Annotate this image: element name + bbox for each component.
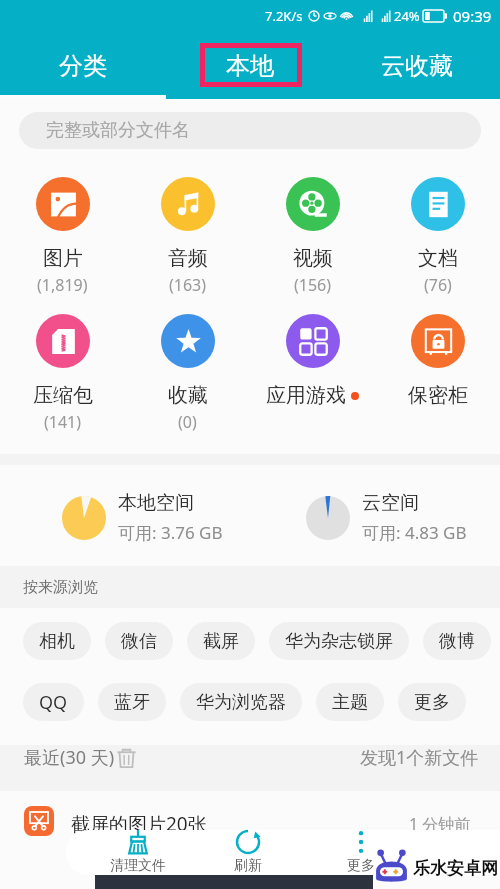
button[interactable]: 更多 (318, 825, 404, 875)
button[interactable]: 音频 (125, 177, 250, 296)
staticText: (76) (424, 274, 452, 296)
other: 更多 (348, 829, 374, 855)
staticText: 刷新 (234, 857, 262, 875)
staticText: 主题 (332, 691, 368, 714)
staticText: 华为浏览器 (196, 691, 286, 714)
other: 清理文件 (125, 829, 151, 855)
staticText: 可用: 3.76 GB (118, 521, 223, 544)
staticText: 华为杂志锁屏 (285, 630, 393, 653)
button[interactable]: 华为浏览器 (180, 683, 302, 721)
staticText: 可用: 4.83 GB (362, 521, 467, 544)
staticText: 发现1个新文件 (360, 745, 479, 770)
staticText: (1,819) (37, 274, 88, 296)
staticText: 按来源浏览 (23, 578, 98, 597)
button[interactable]: 云收藏 (333, 32, 500, 99)
staticText: 相机 (39, 630, 75, 653)
staticText: 乐水安卓网 (413, 858, 498, 879)
button[interactable]: 文档 (375, 177, 500, 296)
button[interactable]: 视频 (250, 177, 375, 296)
staticText: 24% (394, 7, 420, 25)
button[interactable]: 完整或部分文件名 (19, 112, 481, 149)
button[interactable]: 微信 (105, 622, 173, 660)
button[interactable]: 主题 (316, 683, 384, 721)
staticText: 图片 (43, 246, 83, 271)
staticText: 保密柜 (408, 383, 468, 408)
button[interactable]: 云空间 (306, 491, 467, 544)
button[interactable]: 蓝牙 (98, 683, 166, 721)
staticText: 压缩包 (33, 383, 93, 408)
staticText: 蓝牙 (114, 691, 150, 714)
button[interactable]: QQ (23, 683, 84, 721)
staticText: 音频 (168, 246, 208, 271)
button[interactable]: 更多 (398, 683, 466, 721)
staticText: 微博 (439, 630, 475, 653)
staticText: 本地空间 (118, 491, 194, 515)
button[interactable]: 应用游戏 (250, 314, 375, 408)
staticText: 本地 (226, 51, 274, 81)
staticText: 云收藏 (381, 51, 453, 81)
staticText: 最近(30 天) (24, 745, 115, 770)
staticText: 文档 (418, 246, 458, 271)
button[interactable]: 本地 (166, 32, 333, 99)
button[interactable]: 截屏 (187, 622, 255, 660)
staticText: 完整或部分文件名 (46, 119, 190, 142)
staticText: (141) (44, 411, 82, 433)
staticText: 视频 (293, 246, 333, 271)
staticText: 微信 (121, 630, 157, 653)
button[interactable]: 刷新 (205, 825, 291, 875)
staticText: 云空间 (362, 491, 419, 515)
staticText: 09:39 (453, 6, 492, 26)
staticText: 清理文件 (110, 857, 166, 875)
button[interactable]: 本地空间 (62, 491, 223, 544)
button[interactable]: Clear recent files (117, 747, 136, 768)
button[interactable]: 清理文件 (95, 825, 181, 875)
button[interactable]: 相机 (23, 622, 91, 660)
other: 刷新 (235, 829, 261, 855)
staticText: 截屏 (203, 630, 239, 653)
staticText: 应用游戏 (266, 383, 346, 408)
staticText: 更多 (414, 691, 450, 714)
button[interactable]: 图片 (0, 177, 125, 296)
staticText: QQ (39, 690, 68, 715)
staticText: (0) (178, 411, 197, 433)
staticText: (156) (294, 274, 332, 296)
staticText: (163) (169, 274, 207, 296)
button[interactable]: 压缩包 (0, 314, 125, 433)
button[interactable]: 分类 (0, 32, 166, 99)
staticText: 分类 (59, 51, 107, 81)
button[interactable]: 华为杂志锁屏 (269, 622, 409, 660)
staticText: 1 分钟前 (409, 813, 471, 835)
button[interactable]: 收藏 (125, 314, 250, 433)
staticText: 收藏 (168, 383, 208, 408)
staticText: 更多 (347, 857, 375, 875)
staticText: 7.2K/s (265, 7, 303, 25)
button[interactable]: 微博 (423, 622, 491, 660)
staticText: 截屏的图片20张 (71, 811, 207, 837)
button[interactable]: 保密柜 (375, 314, 500, 408)
button[interactable] (24, 806, 54, 836)
